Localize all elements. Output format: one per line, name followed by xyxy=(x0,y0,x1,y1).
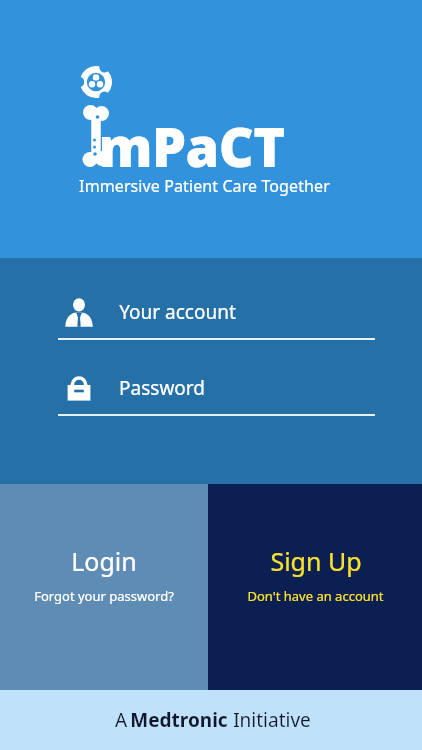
button[interactable]: Account xyxy=(0,290,422,340)
staticText: Don't have an account xyxy=(247,587,384,605)
staticText: Login xyxy=(71,544,137,578)
staticText: Password xyxy=(119,375,205,401)
staticText: A xyxy=(112,707,130,733)
staticText: Sign Up xyxy=(270,544,362,578)
other: Password xyxy=(64,373,94,403)
other: Account xyxy=(64,297,94,327)
staticText: mPaCT xyxy=(98,109,285,183)
staticText: Forgot your password? xyxy=(34,587,174,605)
button[interactable]: Sign Up xyxy=(208,484,422,690)
button[interactable]: Login xyxy=(0,484,208,690)
button[interactable]: Password xyxy=(0,366,422,416)
staticText: Your account xyxy=(119,299,236,325)
staticText: Initiative xyxy=(228,707,311,733)
staticText: Immersive Patient Care Together xyxy=(79,175,330,197)
staticText: Medtronic xyxy=(130,707,228,733)
